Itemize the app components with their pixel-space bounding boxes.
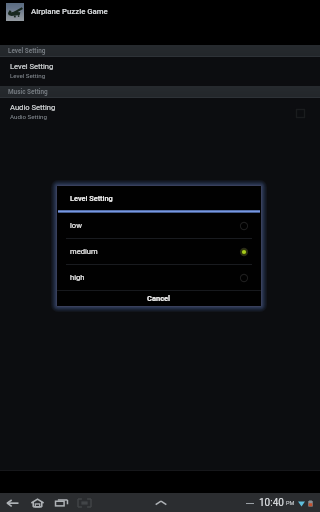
button[interactable]: Home: [24, 493, 50, 512]
staticText: medium: [70, 247, 238, 256]
button[interactable]: Cancel: [57, 291, 261, 306]
button[interactable]: Level Setting: [0, 57, 320, 86]
button[interactable]: Audio Setting: [0, 98, 320, 127]
staticText: 10:40: [259, 497, 284, 509]
staticText: Airplane Puzzle Game: [31, 7, 108, 16]
button[interactable]: App icon: [6, 3, 24, 21]
button[interactable]: Back: [0, 493, 25, 512]
button[interactable]: medium: [57, 239, 261, 264]
staticText: Audio Setting: [10, 103, 56, 112]
staticText: Music Setting: [8, 88, 48, 96]
staticText: Level Setting: [10, 62, 54, 71]
staticText: Level Setting: [8, 47, 46, 55]
button[interactable]: Toggle audio setting: [292, 105, 308, 121]
staticText: Level Setting: [70, 194, 113, 203]
staticText: Cancel: [147, 294, 171, 303]
button[interactable]: Screenshot: [72, 493, 96, 512]
staticText: high: [70, 273, 238, 282]
staticText: Level Setting: [10, 72, 46, 79]
button[interactable]: low: [57, 213, 261, 238]
staticText: Audio Setting: [10, 113, 47, 120]
staticText: low: [70, 221, 238, 230]
button[interactable]: high: [57, 265, 261, 290]
staticText: PM: [286, 500, 295, 507]
button[interactable]: Status: [246, 497, 314, 509]
button[interactable]: Notifications: [151, 493, 170, 512]
button[interactable]: Recent apps: [48, 493, 75, 512]
